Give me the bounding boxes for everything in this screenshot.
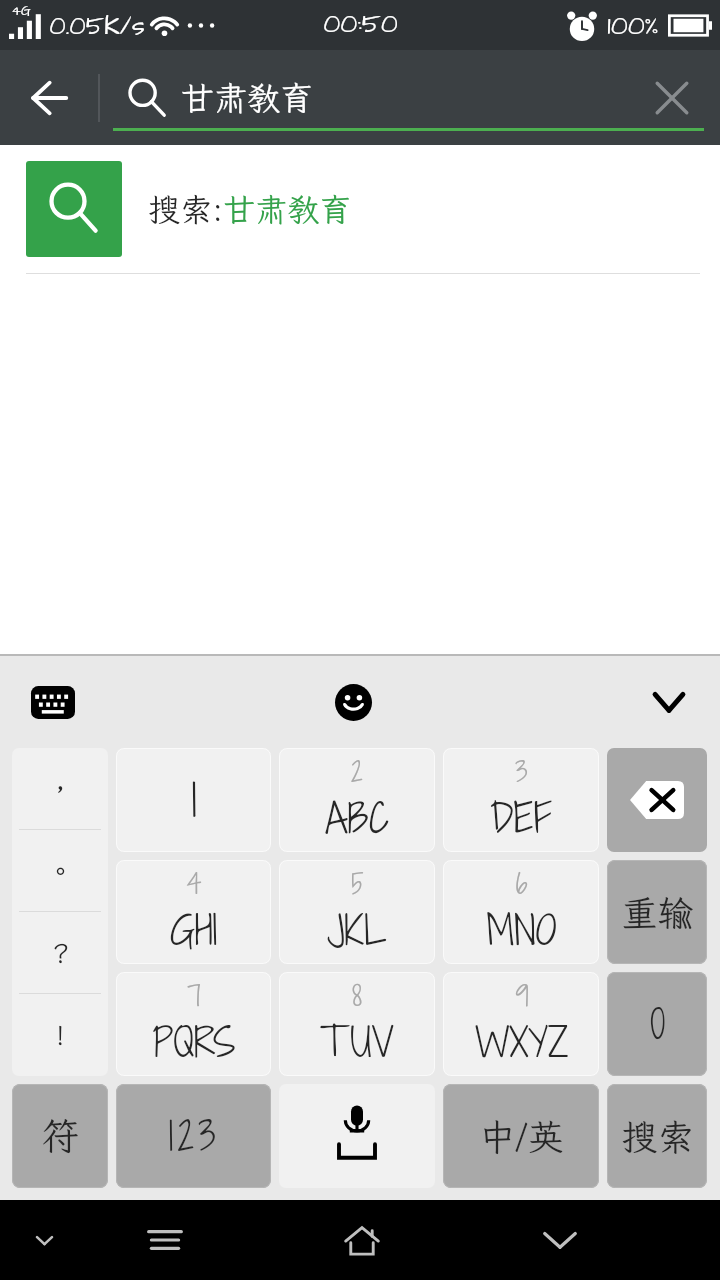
staticText: 符 — [41, 1111, 80, 1161]
staticText: 6 — [515, 864, 528, 903]
button[interactable]: 9 — [443, 972, 599, 1076]
staticText: ， — [47, 771, 74, 807]
staticText: 搜索:甘肃教育 — [148, 188, 352, 230]
staticText: ？ — [47, 935, 74, 971]
button[interactable]: 中/英 — [443, 1084, 599, 1188]
staticText: 4 — [186, 864, 202, 903]
button[interactable]: Voice input — [279, 1084, 435, 1188]
button[interactable]: 5 — [279, 860, 435, 964]
button[interactable]: 8 — [279, 972, 435, 1076]
button[interactable]: Home — [322, 1200, 402, 1280]
staticText: 7 — [187, 976, 201, 1015]
button[interactable]: 搜索 — [607, 1084, 707, 1188]
staticText: 9 — [515, 976, 529, 1015]
button[interactable]: Hide keyboard — [624, 656, 714, 748]
staticText: 8 — [352, 976, 362, 1015]
staticText: 0.05K/s — [49, 8, 145, 44]
button[interactable]: 2 — [279, 748, 435, 852]
staticText: MNO — [486, 903, 557, 958]
button[interactable]: ， — [12, 748, 108, 830]
staticText: DEF — [490, 791, 552, 846]
button[interactable]: ？ — [12, 912, 108, 994]
button[interactable]: 符 — [12, 1084, 108, 1188]
button[interactable]: Emoji — [307, 656, 399, 748]
button[interactable]: 1 — [116, 748, 271, 852]
staticText: 00:50 — [323, 5, 398, 43]
button[interactable]: Collapse keyboard — [4, 1200, 84, 1280]
staticText: WXYZ — [475, 1015, 568, 1070]
button[interactable]: Keyboard layout — [8, 656, 98, 748]
button[interactable]: 重输 — [607, 860, 707, 964]
button[interactable]: Menu — [125, 1200, 205, 1280]
staticText: 甘肃教育 — [181, 76, 624, 119]
button[interactable]: 搜索:甘肃教育 — [0, 145, 720, 273]
staticText: 搜索 — [621, 1113, 694, 1160]
button[interactable]: 7 — [116, 972, 271, 1076]
button[interactable]: 6 — [443, 860, 599, 964]
staticText: ABC — [325, 791, 389, 846]
button[interactable]: 4 — [116, 860, 271, 964]
staticText: JKL — [327, 903, 387, 958]
staticText: 3 — [515, 752, 528, 791]
staticText: TUV — [320, 1015, 394, 1070]
staticText: 2 — [351, 752, 363, 791]
staticText: PQRS — [152, 1015, 236, 1070]
button[interactable]: Clear — [624, 50, 720, 145]
staticText: 重输 — [621, 889, 694, 936]
button[interactable]: Back — [520, 1200, 600, 1280]
button[interactable]: ！ — [12, 994, 108, 1076]
button[interactable]: 。 — [12, 830, 108, 912]
staticText: 4G — [11, 1, 31, 20]
button[interactable]: Back — [0, 50, 98, 145]
staticText: ！ — [47, 1017, 74, 1053]
staticText: GHI — [170, 903, 218, 958]
staticText: 100% — [607, 7, 659, 45]
staticText: 。 — [47, 853, 74, 889]
button[interactable]: 3 — [443, 748, 599, 852]
staticText: 5 — [351, 864, 364, 903]
staticText: 中/英 — [479, 1113, 564, 1160]
button[interactable]: 0 — [607, 972, 707, 1076]
staticText: 1 — [191, 768, 197, 832]
staticText: 0 — [650, 997, 665, 1052]
button[interactable]: Backspace — [607, 748, 707, 852]
staticText: 123 — [168, 1109, 220, 1164]
button[interactable]: 123 — [116, 1084, 271, 1188]
